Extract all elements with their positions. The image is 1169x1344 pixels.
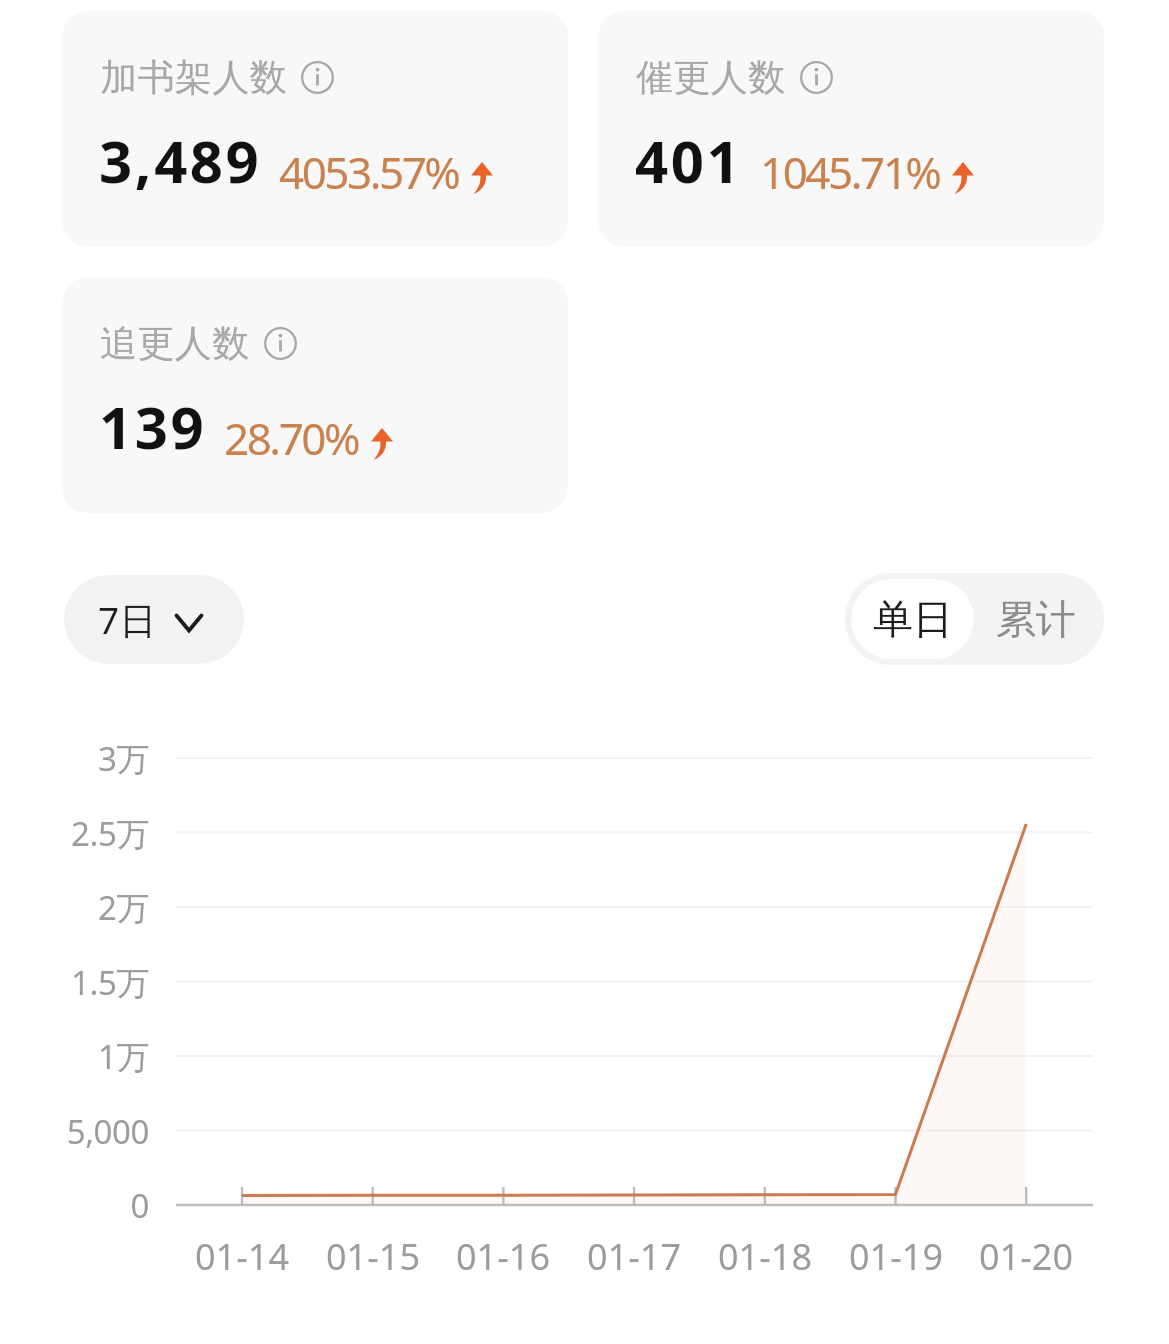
- staticText: 4053.57%: [279, 142, 459, 202]
- staticText: 3万: [0, 736, 149, 781]
- staticText: 追更人数: [100, 320, 250, 367]
- staticText: 7日: [98, 594, 157, 645]
- staticText: 催更人数: [636, 54, 786, 101]
- staticText: 0: [0, 1183, 149, 1228]
- staticText: 01-15: [303, 1232, 443, 1281]
- staticText: 01-20: [956, 1232, 1096, 1281]
- button[interactable]: 7日: [64, 575, 244, 664]
- staticText: 3,489: [99, 121, 262, 200]
- staticText: 1045.71%: [760, 142, 940, 202]
- button[interactable]: 指标说明: [301, 61, 334, 94]
- staticText: 单日: [873, 594, 953, 644]
- staticText: 01-14: [172, 1232, 312, 1281]
- staticText: 5,000: [0, 1109, 149, 1154]
- staticText: 01-16: [433, 1232, 573, 1281]
- button[interactable]: 催更人数: [598, 11, 1104, 247]
- button[interactable]: 指标说明: [800, 61, 833, 94]
- other: 展开: [175, 614, 203, 632]
- button[interactable]: 加书架人数: [62, 11, 568, 247]
- button[interactable]: 指标说明: [264, 327, 297, 360]
- staticText: 01-19: [826, 1232, 966, 1281]
- staticText: 01-17: [564, 1232, 704, 1281]
- staticText: 1万: [0, 1034, 149, 1079]
- staticText: 01-18: [695, 1232, 835, 1281]
- other: 上升: [471, 162, 493, 194]
- other: 上升: [952, 162, 974, 194]
- staticText: 28.70%: [224, 408, 359, 468]
- staticText: 累计: [996, 594, 1076, 644]
- staticText: 401: [635, 121, 743, 200]
- staticText: 1.5万: [0, 960, 149, 1005]
- staticText: 2.5万: [0, 811, 149, 856]
- button[interactable]: 单日: [851, 579, 974, 659]
- other: 上升: [371, 428, 393, 460]
- button[interactable]: 累计: [974, 579, 1098, 659]
- staticText: 139: [99, 387, 207, 466]
- staticText: 2万: [0, 885, 149, 930]
- button[interactable]: 追更人数: [62, 277, 568, 513]
- staticText: 加书架人数: [100, 54, 287, 101]
